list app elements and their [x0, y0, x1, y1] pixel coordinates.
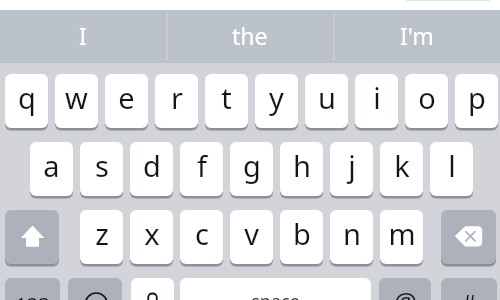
staticText: s [95, 146, 109, 185]
staticText: o [418, 78, 436, 117]
staticText: w [65, 78, 88, 117]
button[interactable]: space [180, 278, 371, 300]
staticText: p [468, 78, 486, 117]
staticText: y [269, 78, 284, 117]
button[interactable]: # [441, 278, 497, 300]
staticText: e [118, 78, 135, 117]
button[interactable]: I'm [334, 10, 500, 63]
button[interactable]: Backspace [441, 210, 496, 264]
button[interactable]: @ [379, 278, 431, 300]
staticText: b [293, 214, 311, 253]
button[interactable]: 123 [5, 278, 60, 300]
staticText: k [394, 146, 410, 185]
button[interactable]: f [180, 142, 223, 196]
staticText: d [143, 146, 161, 185]
button[interactable]: m [380, 210, 423, 264]
button[interactable]: k [380, 142, 423, 196]
staticText: l [448, 146, 456, 185]
staticText: i [373, 78, 381, 117]
button[interactable]: Dictation [131, 278, 174, 300]
staticText: the [232, 20, 268, 51]
staticText: u [318, 78, 336, 117]
button[interactable]: w [55, 74, 98, 128]
button[interactable]: x [130, 210, 173, 264]
staticText: g [243, 146, 261, 185]
button[interactable]: Shift [5, 210, 59, 264]
staticText: @ [394, 284, 417, 300]
button[interactable]: q [5, 74, 48, 128]
button[interactable]: d [130, 142, 173, 196]
button[interactable]: u [305, 74, 348, 128]
button[interactable]: j [330, 142, 373, 196]
button[interactable]: g [230, 142, 273, 196]
staticText: 123 [15, 291, 50, 300]
staticText: t [221, 78, 232, 117]
button[interactable]: y [255, 74, 298, 128]
staticText: f [197, 146, 207, 185]
button[interactable]: t [205, 74, 248, 128]
button[interactable]: c [180, 210, 223, 264]
staticText: a [43, 146, 60, 185]
staticText: I [79, 20, 87, 51]
button[interactable]: i [355, 74, 398, 128]
button[interactable]: b [280, 210, 323, 264]
staticText: r [171, 78, 183, 117]
staticText: c [195, 214, 209, 253]
button[interactable]: Emoji [68, 278, 122, 300]
staticText: # [461, 286, 477, 300]
staticText: x [144, 214, 160, 253]
button[interactable]: h [280, 142, 323, 196]
staticText: z [95, 214, 109, 253]
button[interactable]: n [330, 210, 373, 264]
button[interactable]: r [155, 74, 198, 128]
staticText: n [343, 214, 361, 253]
staticText: j [348, 146, 356, 185]
staticText: m [388, 214, 416, 253]
button[interactable]: s [80, 142, 123, 196]
button[interactable]: p [455, 74, 498, 128]
button[interactable]: the [167, 10, 333, 63]
staticText: h [293, 146, 311, 185]
staticText: space [251, 289, 300, 300]
staticText: I'm [400, 20, 434, 51]
button[interactable]: o [405, 74, 448, 128]
staticText: v [244, 214, 259, 253]
button[interactable]: z [80, 210, 123, 264]
button[interactable]: I [0, 10, 166, 63]
button[interactable]: l [430, 142, 473, 196]
button[interactable]: e [105, 74, 148, 128]
button[interactable]: v [230, 210, 273, 264]
staticText: q [18, 78, 36, 117]
button[interactable]: a [30, 142, 73, 196]
